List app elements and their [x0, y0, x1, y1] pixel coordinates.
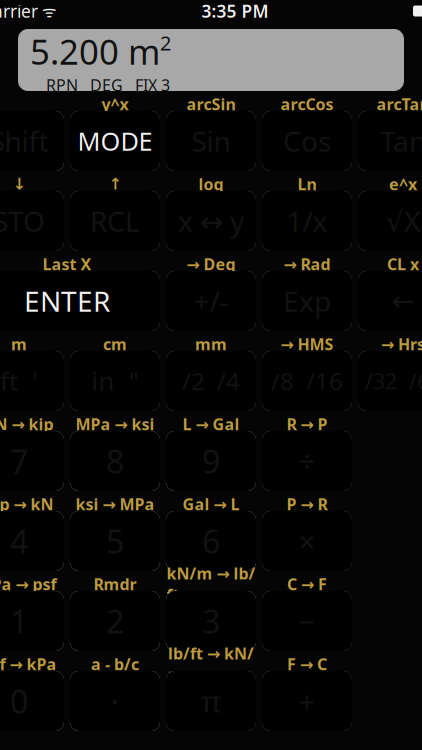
- button[interactable]: 9: [166, 431, 256, 491]
- staticText: Cos: [283, 122, 331, 160]
- staticText: +: [298, 681, 315, 720]
- button[interactable]: MODE: [70, 111, 160, 171]
- staticText: kN/m → lb/ft: [166, 563, 255, 605]
- staticText: 2: [106, 600, 124, 642]
- staticText: → Deg: [186, 253, 235, 275]
- staticText: kPa → psf: [0, 573, 56, 595]
- button[interactable]: √X: [358, 191, 422, 251]
- staticText: cm: [103, 333, 127, 355]
- button[interactable]: /8 /16: [262, 351, 352, 411]
- button[interactable]: 2: [70, 591, 160, 651]
- button[interactable]: x ↔ y: [166, 191, 256, 251]
- button[interactable]: Exp: [262, 271, 352, 331]
- button[interactable]: ft ': [0, 351, 64, 411]
- staticText: DEG: [90, 74, 123, 96]
- staticText: ↓: [12, 175, 25, 193]
- staticText: /8 /16: [271, 365, 343, 397]
- staticText: ÷: [298, 441, 315, 480]
- staticText: e^x: [389, 173, 417, 195]
- staticText: kN → kip: [0, 413, 53, 435]
- staticText: x ↔ y: [178, 202, 244, 240]
- staticText: Ln: [297, 173, 316, 195]
- button[interactable]: STO: [0, 191, 64, 251]
- staticText: 5.200 m: [30, 28, 160, 74]
- staticText: 1/x: [286, 202, 327, 240]
- button[interactable]: Shift: [0, 111, 64, 171]
- staticText: ×: [298, 521, 315, 560]
- button[interactable]: 5: [70, 511, 160, 571]
- staticText: FIX 3: [135, 74, 170, 96]
- staticText: ksi → MPa: [75, 493, 154, 515]
- button[interactable]: π: [166, 671, 256, 731]
- button[interactable]: ENTER: [0, 271, 160, 331]
- button[interactable]: +/-: [166, 271, 256, 331]
- staticText: ᯤ: [38, 0, 57, 22]
- staticText: +/-: [193, 282, 228, 320]
- staticText: −: [298, 601, 315, 640]
- staticText: Carrier: [0, 0, 38, 22]
- staticText: log: [198, 173, 223, 195]
- staticText: ENTER: [24, 282, 110, 320]
- staticText: arcTan: [376, 93, 422, 115]
- button[interactable]: Cos: [262, 111, 352, 171]
- staticText: RCL: [90, 202, 140, 240]
- button[interactable]: 6: [166, 511, 256, 571]
- staticText: √X: [386, 202, 420, 240]
- button[interactable]: /2 /4: [166, 351, 256, 411]
- staticText: CL x: [387, 253, 419, 275]
- button[interactable]: 3: [166, 591, 256, 651]
- button[interactable]: RCL: [70, 191, 160, 251]
- staticText: C → F: [287, 573, 327, 595]
- button[interactable]: 1/x: [262, 191, 352, 251]
- staticText: STO: [0, 202, 45, 240]
- staticText: 4: [10, 520, 28, 562]
- staticText: → Hrs: [381, 333, 422, 355]
- staticText: 8: [106, 440, 124, 482]
- button[interactable]: 1: [0, 591, 64, 651]
- staticText: 6: [202, 520, 220, 562]
- staticText: Rmdr: [93, 573, 136, 595]
- staticText: MPa → ksi: [75, 413, 154, 435]
- staticText: 3: [202, 600, 220, 642]
- staticText: → Rad: [283, 253, 330, 275]
- button[interactable]: Sin: [166, 111, 256, 171]
- staticText: Sin: [191, 122, 230, 160]
- staticText: Exp: [283, 282, 331, 320]
- staticText: Gal → L: [182, 493, 239, 515]
- button[interactable]: 4: [0, 511, 64, 571]
- staticText: /32 /64: [365, 367, 422, 395]
- staticText: Shift: [0, 122, 48, 160]
- staticText: L → Gal: [182, 413, 239, 435]
- staticText: 0: [10, 680, 28, 722]
- staticText: ←: [391, 285, 414, 317]
- staticText: in ": [91, 364, 138, 398]
- button[interactable]: 7: [0, 431, 64, 491]
- staticText: 3:35 PM: [201, 0, 268, 22]
- staticText: arcCos: [280, 93, 333, 115]
- staticText: lb/ft → kN/m: [168, 643, 254, 685]
- button[interactable]: 8: [70, 431, 160, 491]
- staticText: mm: [195, 333, 227, 355]
- staticText: π: [201, 681, 220, 720]
- staticText: F → C: [287, 653, 327, 675]
- staticText: R → P: [286, 413, 327, 435]
- staticText: 5: [106, 520, 124, 562]
- button[interactable]: /32 /64: [358, 351, 422, 411]
- staticText: psf → kPa: [0, 653, 56, 675]
- button[interactable]: Tan: [358, 111, 422, 171]
- staticText: 2: [160, 29, 171, 56]
- staticText: m: [11, 333, 27, 355]
- staticText: /2 /4: [182, 365, 240, 397]
- button[interactable]: ·: [70, 671, 160, 731]
- button[interactable]: 0: [0, 671, 64, 731]
- staticText: → HMS: [280, 333, 333, 355]
- button[interactable]: in ": [70, 351, 160, 411]
- staticText: RPN: [46, 74, 78, 96]
- staticText: 7: [10, 440, 28, 482]
